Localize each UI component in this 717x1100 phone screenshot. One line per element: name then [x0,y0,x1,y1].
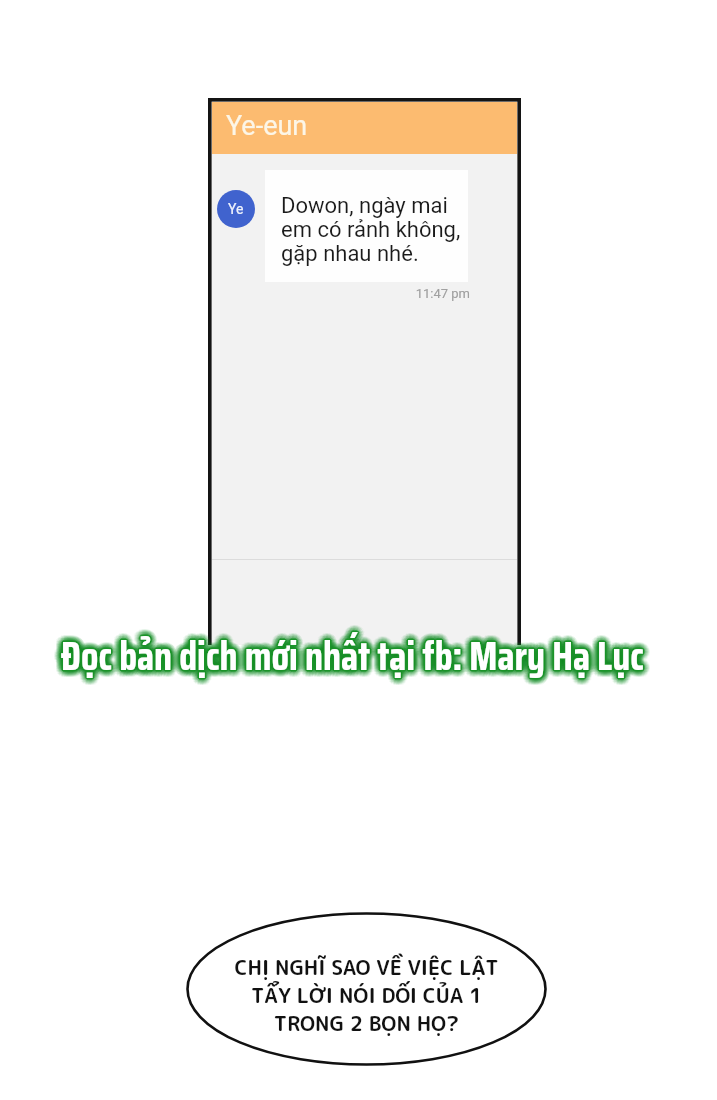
staticText: Đọc bản dịch mới nhất tại fb: Mary Hạ Lụ… [60,632,643,695]
staticText: Đọc bản dịch mới nhất tại fb: Mary Hạ Lụ… [54,626,637,689]
staticText: Đọc bản dịch mới nhất tại fb: Mary Hạ Lụ… [65,620,648,683]
staticText: Đọc bản dịch mới nhất tại fb: Mary Hạ Lụ… [62,624,645,687]
staticText: Đọc bản dịch mới nhất tại fb: Mary Hạ Lụ… [64,621,647,684]
staticText: Đọc bản dịch mới nhất tại fb: Mary Hạ Lụ… [62,624,645,687]
staticText: Đọc bản dịch mới nhất tại fb: Mary Hạ Lụ… [60,624,643,687]
staticText: Đọc bản dịch mới nhất tại fb: Mary Hạ Lụ… [55,626,638,689]
staticText: Đọc bản dịch mới nhất tại fb: Mary Hạ Lụ… [60,624,643,687]
staticText: Đọc bản dịch mới nhất tại fb: Mary Hạ Lụ… [67,623,650,686]
staticText: Đọc bản dịch mới nhất tại fb: Mary Hạ Lụ… [65,624,648,687]
staticText: Đọc bản dịch mới nhất tại fb: Mary Hạ Lụ… [68,624,651,687]
staticText: Đọc bản dịch mới nhất tại fb: Mary Hạ Lụ… [54,624,637,687]
staticText: Đọc bản dịch mới nhất tại fb: Mary Hạ Lụ… [54,622,637,685]
staticText: Đọc bản dịch mới nhất tại fb: Mary Hạ Lụ… [57,626,640,689]
staticText: Đọc bản dịch mới nhất tại fb: Mary Hạ Lụ… [60,622,643,685]
button[interactable]: Ye-eun avatar [217,190,255,228]
staticText: Đọc bản dịch mới nhất tại fb: Mary Hạ Lụ… [63,622,646,685]
staticText: Đọc bản dịch mới nhất tại fb: Mary Hạ Lụ… [62,631,645,694]
staticText: Đọc bản dịch mới nhất tại fb: Mary Hạ Lụ… [66,624,649,687]
staticText: Đọc bản dịch mới nhất tại fb: Mary Hạ Lụ… [58,624,641,687]
staticText: Đọc bản dịch mới nhất tại fb: Mary Hạ Lụ… [62,622,645,685]
staticText: Đọc bản dịch mới nhất tại fb: Mary Hạ Lụ… [63,625,646,688]
staticText: Đọc bản dịch mới nhất tại fb: Mary Hạ Lụ… [56,621,639,684]
staticText: Đọc bản dịch mới nhất tại fb: Mary Hạ Lụ… [62,626,645,689]
staticText: Đọc bản dịch mới nhất tại fb: Mary Hạ Lụ… [63,624,646,687]
staticText: Đọc bản dịch mới nhất tại fb: Mary Hạ Lụ… [62,628,645,691]
staticText: Đọc bản dịch mới nhất tại fb: Mary Hạ Lụ… [60,626,643,689]
staticText: Đọc bản dịch mới nhất tại fb: Mary Hạ Lụ… [57,620,640,683]
staticText: Đọc bản dịch mới nhất tại fb: Mary Hạ Lụ… [62,632,645,695]
staticText: Đọc bản dịch mới nhất tại fb: Mary Hạ Lụ… [62,627,645,690]
staticText: Đọc bản dịch mới nhất tại fb: Mary Hạ Lụ… [60,624,643,687]
staticText: Đọc bản dịch mới nhất tại fb: Mary Hạ Lụ… [60,620,643,683]
staticText: Đọc bản dịch mới nhất tại fb: Mary Hạ Lụ… [62,621,645,684]
staticText: Đọc bản dịch mới nhất tại fb: Mary Hạ Lụ… [65,627,648,690]
staticText: Đọc bản dịch mới nhất tại fb: Mary Hạ Lụ… [62,626,645,689]
staticText: Đọc bản dịch mới nhất tại fb: Mary Hạ Lụ… [60,619,643,682]
staticText: Đọc bản dịch mới nhất tại fb: Mary Hạ Lụ… [57,625,640,688]
staticText: Đọc bản dịch mới nhất tại fb: Mary Hạ Lụ… [61,623,644,686]
staticText: Đọc bản dịch mới nhất tại fb: Mary Hạ Lụ… [63,620,646,683]
staticText: CHỊ NGHĨ SAO VỀ VIỆC LẬT TẨY LỜI NÓI DỐI… [234,953,499,1038]
staticText: Đọc bản dịch mới nhất tại fb: Mary Hạ Lụ… [64,628,647,691]
staticText: Ye-eun [226,110,308,142]
staticText: Đọc bản dịch mới nhất tại fb: Mary Hạ Lụ… [59,625,642,688]
staticText: Đọc bản dịch mới nhất tại fb: Mary Hạ Lụ… [55,629,638,692]
staticText: Đọc bản dịch mới nhất tại fb: Mary Hạ Lụ… [55,623,638,686]
staticText: Đọc bản dịch mới nhất tại fb: Mary Hạ Lụ… [60,626,643,689]
staticText: Đọc bản dịch mới nhất tại fb: Mary Hạ Lụ… [59,627,642,690]
staticText: Đọc bản dịch mới nhất tại fb: Mary Hạ Lụ… [61,628,644,691]
staticText: Ye [228,201,244,217]
staticText: Đọc bản dịch mới nhất tại fb: Mary Hạ Lụ… [57,628,640,691]
staticText: Đọc bản dịch mới nhất tại fb: Mary Hạ Lụ… [62,619,645,682]
staticText: Đọc bản dịch mới nhất tại fb: Mary Hạ Lụ… [63,631,646,694]
staticText: Đọc bản dịch mới nhất tại fb: Mary Hạ Lụ… [63,627,646,690]
staticText: Đọc bản dịch mới nhất tại fb: Mary Hạ Lụ… [60,630,643,693]
staticText: Đọc bản dịch mới nhất tại fb: Mary Hạ Lụ… [63,625,646,688]
staticText: Đọc bản dịch mới nhất tại fb: Mary Hạ Lụ… [56,624,639,687]
staticText: Đọc bản dịch mới nhất tại fb: Mary Hạ Lụ… [64,632,647,695]
staticText: Đọc bản dịch mới nhất tại fb: Mary Hạ Lụ… [56,627,639,690]
staticText: Đọc bản dịch mới nhất tại fb: Mary Hạ Lụ… [59,626,642,689]
button[interactable]: Dowon, ngày mai em có rảnh không, gặp nh… [265,170,468,282]
staticText: Đọc bản dịch mới nhất tại fb: Mary Hạ Lụ… [64,626,647,689]
staticText: Đọc bản dịch mới nhất tại fb: Mary Hạ Lụ… [56,629,639,692]
staticText: Đọc bản dịch mới nhất tại fb: Mary Hạ Lụ… [56,630,639,693]
staticText: Đọc bản dịch mới nhất tại fb: Mary Hạ Lụ… [60,631,643,694]
staticText: Đọc bản dịch mới nhất tại fb: Mary Hạ Lụ… [67,622,650,685]
staticText: Đọc bản dịch mới nhất tại fb: Mary Hạ Lụ… [62,620,645,683]
staticText: Đọc bản dịch mới nhất tại fb: Mary Hạ Lụ… [59,632,642,695]
button[interactable]: Ye-eun [212,102,517,154]
staticText: 11:47 pm [265,286,470,301]
staticText: Đọc bản dịch mới nhất tại fb: Mary Hạ Lụ… [65,628,648,691]
staticText: Đọc bản dịch mới nhất tại fb: Mary Hạ Lụ… [62,625,645,688]
staticText: Đọc bản dịch mới nhất tại fb: Mary Hạ Lụ… [65,630,648,693]
staticText: Đọc bản dịch mới nhất tại fb: Mary Hạ Lụ… [66,629,649,692]
staticText: Đọc bản dịch mới nhất tại fb: Mary Hạ Lụ… [66,630,649,693]
staticText: Đọc bản dịch mới nhất tại fb: Mary Hạ Lụ… [55,627,638,690]
staticText: Đọc bản dịch mới nhất tại fb: Mary Hạ Lụ… [60,626,643,689]
staticText: Đọc bản dịch mới nhất tại fb: Mary Hạ Lụ… [62,618,645,681]
staticText: Đọc bản dịch mới nhất tại fb: Mary Hạ Lụ… [60,624,643,687]
staticText: Đọc bản dịch mới nhất tại fb: Mary Hạ Lụ… [66,621,649,684]
staticText: Đọc bản dịch mới nhất tại fb: Mary Hạ Lụ… [61,624,644,687]
staticText: Đọc bản dịch mới nhất tại fb: Mary Hạ Lụ… [60,623,643,686]
staticText: Đọc bản dịch mới nhất tại fb: Mary Hạ Lụ… [59,623,642,686]
staticText: Đọc bản dịch mới nhất tại fb: Mary Hạ Lụ… [60,625,643,688]
staticText: Đọc bản dịch mới nhất tại fb: Mary Hạ Lụ… [67,627,650,690]
staticText: Đọc bản dịch mới nhất tại fb: Mary Hạ Lụ… [58,629,641,692]
staticText: Đọc bản dịch mới nhất tại fb: Mary Hạ Lụ… [63,629,646,692]
staticText: Đọc bản dịch mới nhất tại fb: Mary Hạ Lụ… [57,623,640,686]
staticText: Đọc bản dịch mới nhất tại fb: Mary Hạ Lụ… [64,619,647,682]
staticText: Đọc bản dịch mới nhất tại fb: Mary Hạ Lụ… [61,621,644,684]
staticText: Đọc bản dịch mới nhất tại fb: Mary Hạ Lụ… [59,619,642,682]
staticText: Đọc bản dịch mới nhất tại fb: Mary Hạ Lụ… [58,626,641,689]
staticText: Đọc bản dịch mới nhất tại fb: Mary Hạ Lụ… [63,630,646,693]
staticText: Đọc bản dịch mới nhất tại fb: Mary Hạ Lụ… [62,626,645,689]
staticText: Đọc bản dịch mới nhất tại fb: Mary Hạ Lụ… [59,625,642,688]
staticText: Đọc bản dịch mới nhất tại fb: Mary Hạ Lụ… [57,623,640,686]
staticText: Đọc bản dịch mới nhất tại fb: Mary Hạ Lụ… [58,619,641,682]
staticText: Đọc bản dịch mới nhất tại fb: Mary Hạ Lụ… [59,631,642,694]
staticText: Đọc bản dịch mới nhất tại fb: Mary Hạ Lụ… [56,625,639,688]
staticText: Đọc bản dịch mới nhất tại fb: Mary Hạ Lụ… [59,621,642,684]
